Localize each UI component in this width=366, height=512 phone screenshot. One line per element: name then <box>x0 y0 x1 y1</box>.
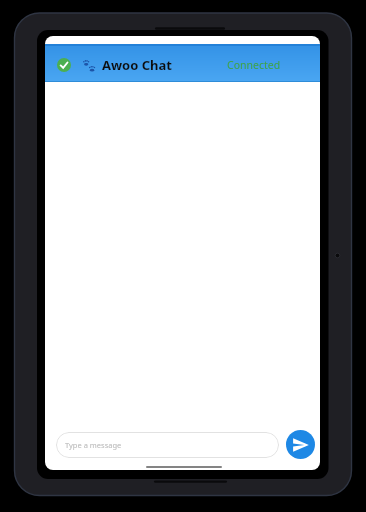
staticText: Connected <box>227 58 281 72</box>
staticText: Type a message <box>65 440 122 450</box>
staticText: Awoo Chat <box>102 56 172 74</box>
button[interactable] <box>286 430 315 459</box>
button[interactable] <box>57 58 71 72</box>
button[interactable] <box>82 58 96 72</box>
button[interactable]: Type a message <box>56 432 279 458</box>
button[interactable]: Connected <box>227 58 281 72</box>
